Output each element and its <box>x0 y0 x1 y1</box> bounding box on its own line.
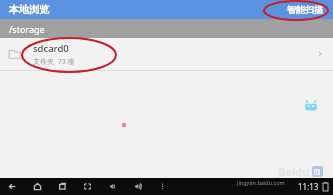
button[interactable]: More options <box>150 178 175 195</box>
staticText: 囧 <box>314 167 321 176</box>
staticText: 本地浏览 <box>9 3 49 16</box>
staticText: 文件夹 73 项 <box>33 57 75 67</box>
staticText: Baidu <box>278 164 310 178</box>
staticText: 11:13 <box>298 181 319 192</box>
button[interactable]: sdcard0 <box>0 38 333 70</box>
button[interactable]: 智能扫描 <box>283 2 327 17</box>
button[interactable]: Recents <box>50 178 75 195</box>
button[interactable]: Home <box>25 178 50 195</box>
button[interactable]: /storage <box>0 19 333 38</box>
button[interactable]: Back <box>0 178 25 195</box>
button[interactable]: Volume down <box>100 178 125 195</box>
staticText: sdcard0 <box>33 42 69 55</box>
button[interactable]: Volume up <box>125 178 150 195</box>
button[interactable]: Fullscreen <box>75 178 100 195</box>
staticText: /storage <box>9 23 45 35</box>
staticText: 智能扫描 <box>287 4 323 15</box>
staticText: jingyan.baidu.com <box>237 179 285 186</box>
